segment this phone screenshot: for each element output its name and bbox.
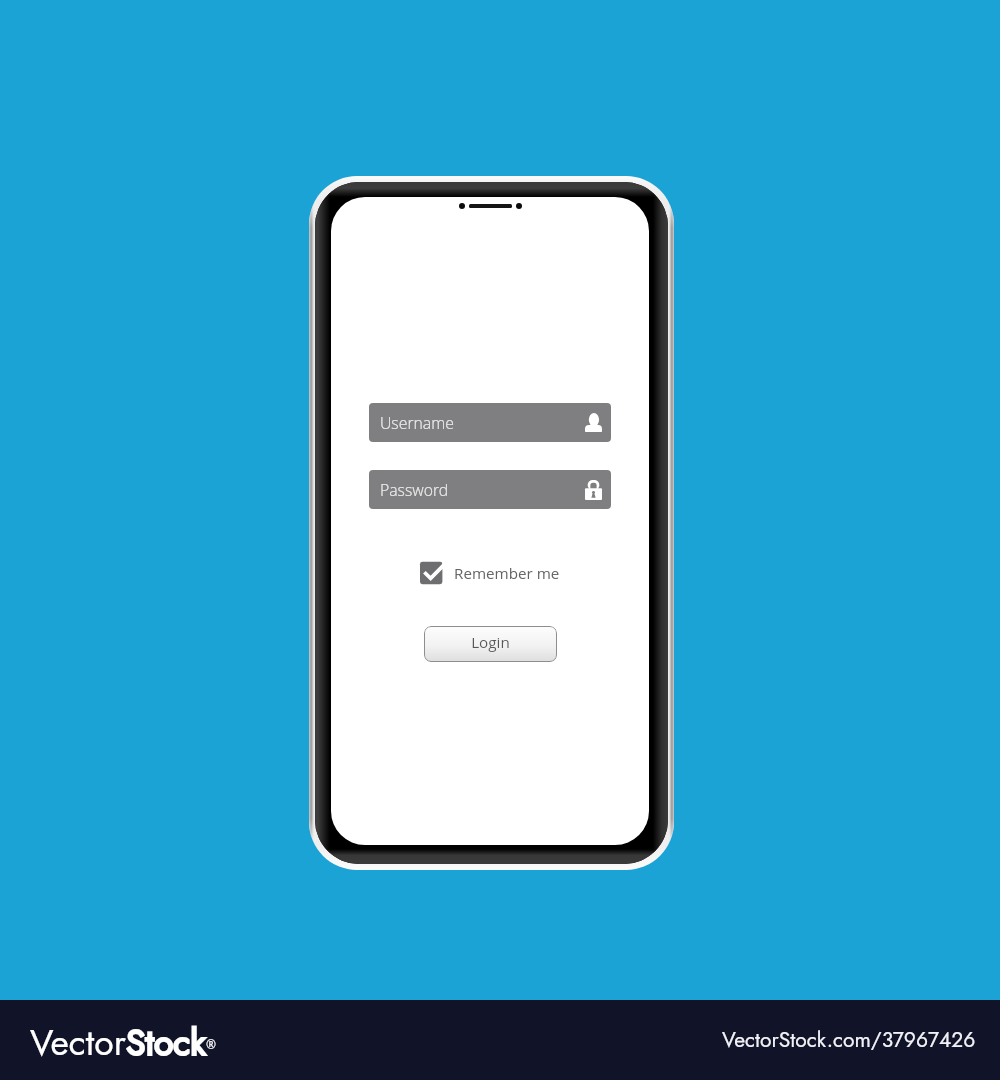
staticText: ® xyxy=(206,1036,216,1052)
staticText: Username xyxy=(380,412,454,434)
button[interactable]: Username xyxy=(369,403,611,442)
button[interactable]: Password xyxy=(369,470,611,509)
other: Username xyxy=(585,413,602,432)
button[interactable]: Remember me xyxy=(420,557,560,589)
button[interactable]: Login xyxy=(424,626,557,662)
staticText: Vector xyxy=(30,1017,126,1068)
staticText: Password xyxy=(380,479,449,501)
staticText: Remember me xyxy=(454,563,560,584)
staticText: Stock xyxy=(126,1017,206,1068)
other: Password xyxy=(585,480,602,500)
staticText: Stock xyxy=(126,1017,206,1068)
staticText: Login xyxy=(471,632,510,653)
staticText: VectorStock.com/37967426 xyxy=(722,1025,976,1055)
